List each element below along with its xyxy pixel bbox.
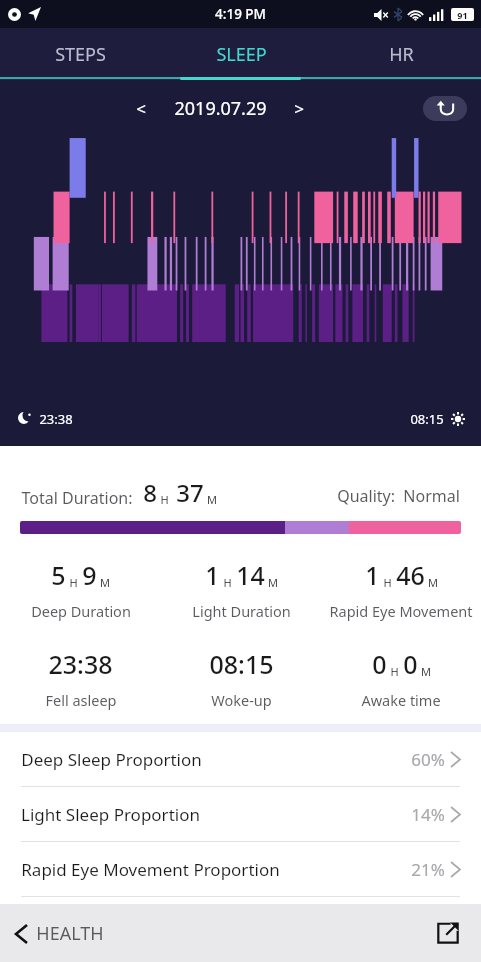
staticText: M [428, 575, 438, 590]
staticText: Fell asleep [45, 690, 117, 710]
button[interactable]: SLEEP [161, 28, 321, 80]
staticText: 08:15 [410, 410, 444, 428]
staticText: 1 [365, 558, 380, 592]
staticText: M [207, 492, 217, 507]
staticText: Rapid Eye Movement [329, 601, 473, 621]
staticText: STEPS [55, 42, 106, 67]
staticText: 23:38 [48, 647, 113, 681]
staticText: 4:19 PM [215, 5, 266, 23]
staticText: 21% [411, 858, 445, 881]
staticText: Rapid Eye Movement Proportion [21, 858, 280, 881]
staticText: Woke-up [211, 690, 272, 710]
staticText: 1 [205, 558, 220, 592]
staticText: M [268, 575, 278, 590]
staticText: H [160, 492, 169, 507]
staticText: 37 [176, 476, 204, 509]
staticText: 91 [457, 9, 468, 21]
staticText: 60% [411, 748, 445, 771]
staticText: Light Sleep Proportion [21, 803, 200, 826]
staticText: Deep Duration [31, 601, 131, 621]
staticText: < [136, 97, 146, 120]
staticText: 8 [143, 476, 157, 509]
staticText: HR [389, 42, 414, 67]
staticText: 0 [403, 647, 418, 681]
staticText: Quality: Normal [337, 485, 460, 507]
button[interactable]: Open externally [433, 918, 463, 948]
button[interactable]: Rapid Eye Movement Proportion [0, 842, 481, 897]
staticText: 0 [372, 647, 387, 681]
staticText: 46 [396, 558, 425, 592]
button[interactable]: HR [321, 28, 481, 80]
staticText: HEALTH [36, 921, 104, 946]
staticText: > [294, 97, 304, 120]
staticText: Light Duration [192, 601, 291, 621]
staticText: 14% [411, 803, 445, 826]
staticText: 14 [236, 558, 265, 592]
staticText: 23:38 [39, 410, 73, 428]
staticText: Awake time [361, 690, 441, 710]
staticText: 5 [51, 558, 66, 592]
button[interactable]: Next day [284, 93, 314, 123]
staticText: Total Duration: [21, 487, 133, 509]
button[interactable]: Refresh [423, 96, 467, 121]
staticText: M [421, 664, 431, 679]
staticText: Deep Sleep Proportion [21, 748, 202, 771]
staticText: 2019.07.29 [174, 96, 267, 121]
staticText: SLEEP [216, 42, 267, 67]
button[interactable]: Previous day [126, 93, 156, 123]
button[interactable]: STEPS [0, 28, 161, 80]
staticText: H [69, 575, 78, 590]
staticText: 9 [82, 558, 97, 592]
button[interactable]: Deep Sleep Proportion [0, 732, 481, 787]
button[interactable]: Back to Health [16, 921, 104, 946]
staticText: H [383, 575, 392, 590]
staticText: H [223, 575, 232, 590]
staticText: 08:15 [209, 647, 274, 681]
staticText: M [100, 575, 110, 590]
staticText: H [390, 664, 399, 679]
button[interactable]: Light Sleep Proportion [0, 787, 481, 842]
